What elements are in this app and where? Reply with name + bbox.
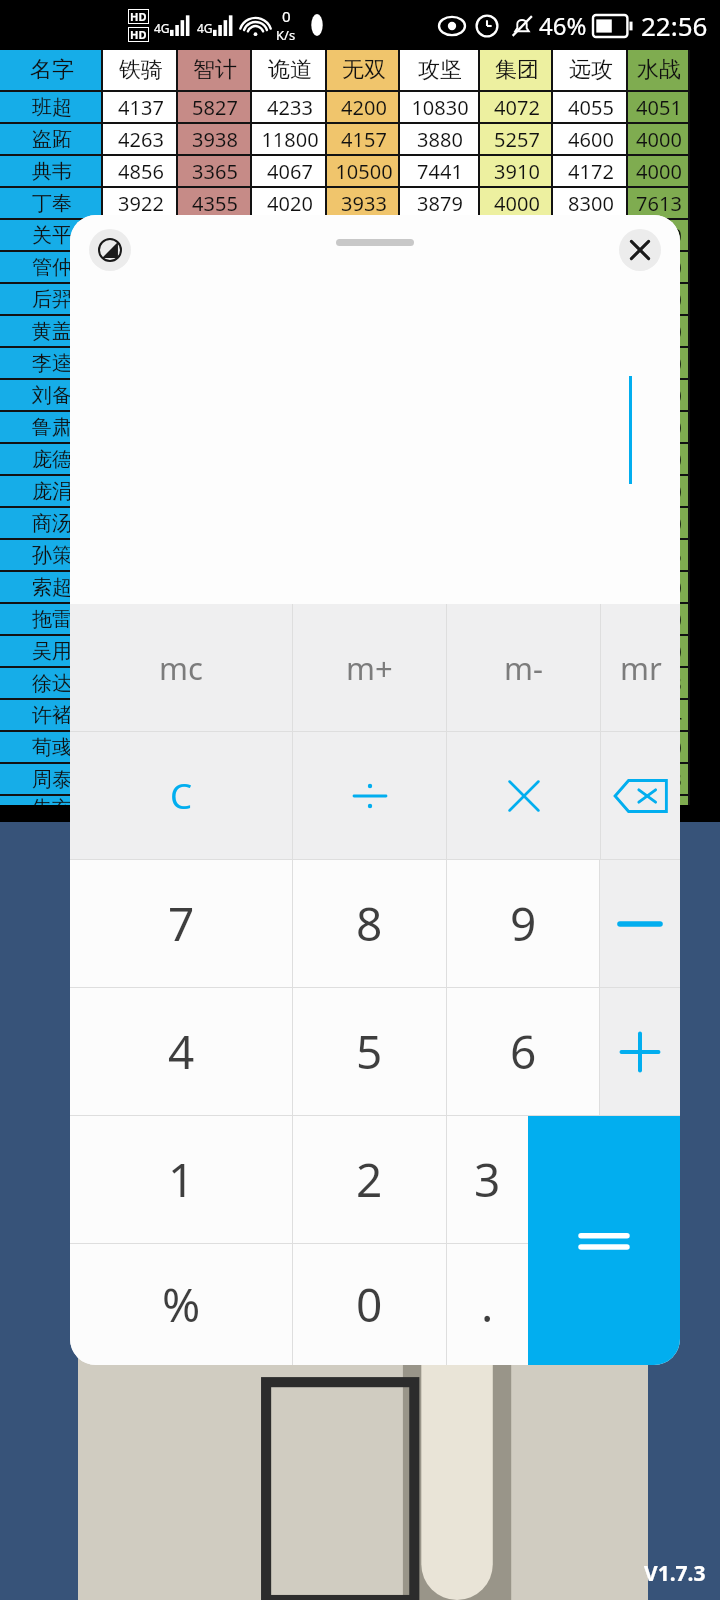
button[interactable]: Toggle theme <box>89 229 131 271</box>
staticText: 4200 <box>118 638 164 665</box>
staticText: 4100 <box>118 254 164 281</box>
staticText: 10500 <box>335 158 393 185</box>
staticText: m- <box>504 647 543 689</box>
button[interactable]: Multiply <box>447 732 600 859</box>
staticText: 9 <box>510 892 537 955</box>
button[interactable]: m- <box>447 604 600 731</box>
staticText: 远攻 <box>569 56 613 84</box>
staticText: 排 <box>353 877 384 916</box>
staticText: 4200 <box>636 574 682 601</box>
staticText: 4203 <box>636 670 682 697</box>
button[interactable]: Divide <box>293 732 446 859</box>
staticText: 荀彧 <box>32 735 72 760</box>
button[interactable]: 2 <box>293 1116 446 1243</box>
button[interactable]: Backspace <box>601 732 680 859</box>
button[interactable]: 1 <box>70 1116 292 1243</box>
staticText: 吴用 <box>32 639 72 664</box>
staticText: . <box>481 1273 494 1336</box>
staticText: 4051 <box>636 94 682 121</box>
button[interactable]: % <box>70 1244 292 1365</box>
staticText: 4103 <box>636 766 682 793</box>
staticText: 4100 <box>494 670 540 697</box>
staticText: 4100 <box>636 318 682 345</box>
staticText: 4G <box>197 20 213 36</box>
button[interactable]: Minus <box>600 860 680 987</box>
staticText: C <box>170 772 193 820</box>
button[interactable]: . <box>447 1244 528 1365</box>
button[interactable]: Close <box>619 229 661 271</box>
staticText: 3879 <box>417 190 463 217</box>
staticText: 5 <box>356 1020 383 1083</box>
button[interactable]: C <box>70 732 292 859</box>
staticText: 46% <box>539 9 587 42</box>
staticText: 4000 <box>636 382 682 409</box>
staticText: 4005 <box>636 542 682 569</box>
button[interactable]: mr <box>601 604 680 731</box>
button[interactable]: 4 <box>70 988 292 1115</box>
staticText: 周泰 <box>32 767 72 792</box>
staticText: 攻坚 <box>418 56 462 84</box>
staticText: 1 <box>168 1148 195 1211</box>
staticText: 3922 <box>118 190 164 217</box>
button[interactable]: mc <box>70 604 292 731</box>
button[interactable]: 0 <box>293 1244 446 1365</box>
button[interactable]: 8 <box>293 860 446 987</box>
staticText: 位 <box>353 923 384 962</box>
staticText: 鲁肃 <box>32 415 72 440</box>
button[interactable]: Plus <box>600 988 680 1115</box>
button[interactable]: 3 <box>447 1116 528 1243</box>
button[interactable]: 5 <box>293 988 446 1115</box>
staticText: 朱亥 <box>32 796 72 805</box>
button[interactable]: 9 <box>447 860 599 987</box>
staticText: 丁奉 <box>32 191 72 216</box>
button[interactable]: 7 <box>70 860 292 987</box>
staticText: 5257 <box>494 126 540 153</box>
staticText: 4000 <box>494 638 540 665</box>
staticText: 许褚 <box>32 703 72 728</box>
staticText: 4000 <box>636 606 682 633</box>
button[interactable]: 6 <box>447 988 599 1115</box>
button[interactable]: m+ <box>293 604 446 731</box>
staticText: 4200 <box>341 94 387 121</box>
staticText: 3910 <box>494 158 540 185</box>
button[interactable]: Equals <box>528 1116 680 1365</box>
